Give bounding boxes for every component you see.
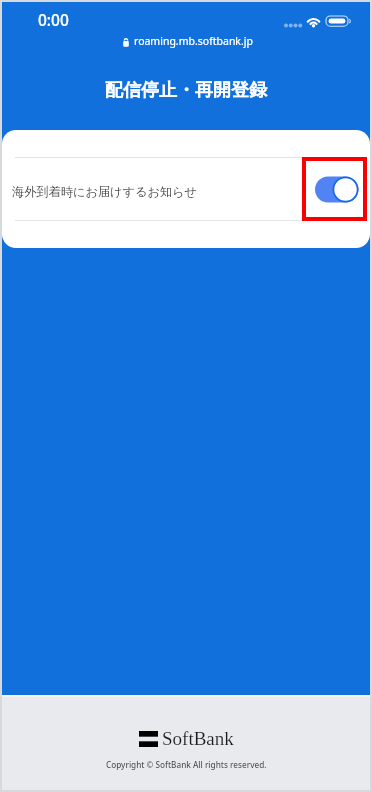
staticText: roaming.mb.softbank.jp — [134, 34, 253, 48]
staticText: SoftBank — [162, 728, 234, 749]
button[interactable]: 海外到着時にお届けするお知らせ — [2, 158, 370, 220]
staticText: 0:00 — [38, 9, 69, 30]
staticText: Copyright © SoftBank All rights reserved… — [106, 759, 267, 770]
staticText: 配信停止・再開登録 — [2, 79, 370, 102]
staticText: 海外到着時にお届けするお知らせ — [12, 184, 198, 199]
button[interactable]: Toggle overseas arrival notification — [315, 176, 359, 203]
